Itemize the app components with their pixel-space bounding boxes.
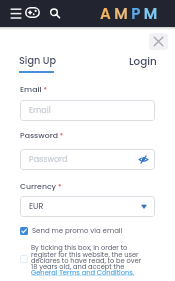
button[interactable]: Games	[25, 7, 40, 18]
staticText: Login	[129, 54, 157, 69]
staticText: AMPM	[100, 3, 161, 24]
button[interactable]: Accept terms	[20, 255, 28, 263]
staticText: Password *	[20, 130, 64, 141]
staticText: Sign Up	[19, 54, 57, 68]
other: Open currency list	[141, 204, 147, 209]
button[interactable]: Password	[20, 149, 155, 170]
button[interactable]: Send me promo via email	[20, 226, 123, 236]
staticText: Password	[29, 154, 68, 165]
button[interactable]: Email	[20, 100, 155, 121]
staticText: Email *	[20, 84, 47, 95]
button[interactable]: Menu	[6, 4, 26, 24]
staticText: Currency *	[20, 181, 62, 192]
staticText: Email	[29, 105, 51, 116]
staticText: Send me promo via email	[32, 226, 123, 236]
button[interactable]: Sign Up	[19, 54, 57, 68]
button[interactable]: EUR	[20, 196, 155, 217]
staticText: By ticking this box, in order to registe…	[31, 243, 142, 277]
staticText: EUR	[29, 201, 44, 212]
button[interactable]: Search	[48, 6, 61, 19]
button[interactable]: Close	[149, 33, 168, 50]
other: Show password	[139, 155, 148, 164]
button[interactable]: Login	[129, 54, 157, 69]
